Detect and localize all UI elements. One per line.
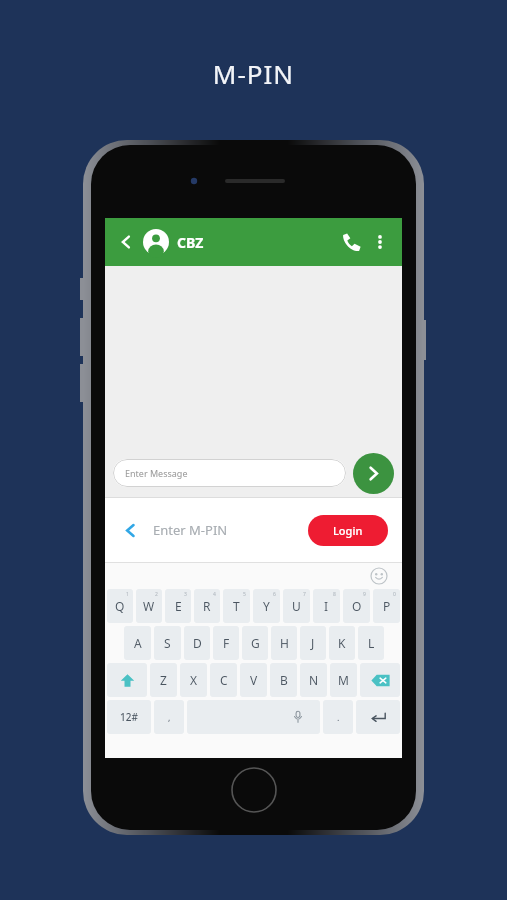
staticText: 5 [243, 591, 246, 598]
staticText: Login [333, 523, 363, 538]
button[interactable]: B [270, 663, 297, 697]
staticText: 2 [155, 591, 158, 598]
button[interactable]: 7 [283, 589, 310, 623]
staticText: I [324, 598, 329, 614]
button[interactable]: X [180, 663, 207, 697]
staticText: B [280, 672, 288, 688]
button[interactable]: Login [308, 515, 388, 546]
button[interactable]: Send [353, 453, 394, 494]
staticText: Z [160, 672, 167, 688]
staticText: M [338, 672, 349, 688]
button[interactable]: G [242, 626, 268, 660]
button[interactable]: 12# [107, 700, 151, 734]
staticText: Enter M-PIN [153, 521, 228, 539]
button[interactable]: D [184, 626, 210, 660]
staticText: 12# [120, 710, 138, 724]
staticText: J [311, 635, 315, 651]
button[interactable]: More options [368, 230, 392, 254]
staticText: L [368, 635, 375, 651]
staticText: T [233, 598, 240, 614]
button[interactable]: . [323, 700, 353, 734]
staticText: E [175, 598, 182, 614]
staticText: X [190, 672, 198, 688]
staticText: K [338, 635, 346, 651]
staticText: H [280, 635, 289, 651]
button[interactable]: C [210, 663, 237, 697]
staticText: Q [115, 598, 125, 614]
staticText: 4 [213, 591, 216, 598]
staticText: D [193, 635, 202, 651]
button[interactable]: Call [336, 227, 366, 257]
button[interactable]: 3 [165, 589, 191, 623]
button[interactable]: 2 [136, 589, 162, 623]
staticText: P [383, 598, 391, 614]
button[interactable]: 9 [343, 589, 370, 623]
button[interactable]: , [154, 700, 184, 734]
button[interactable]: Z [150, 663, 177, 697]
button[interactable]: V [240, 663, 267, 697]
staticText: W [143, 598, 155, 614]
staticText: G [251, 635, 260, 651]
button[interactable]: Backspace [360, 663, 400, 697]
button[interactable]: 8 [313, 589, 340, 623]
staticText: N [309, 672, 319, 688]
button[interactable]: 1 [107, 589, 133, 623]
staticText: , [168, 711, 171, 723]
button[interactable]: 5 [223, 589, 250, 623]
button[interactable]: Enter [356, 700, 400, 734]
button[interactable]: J [300, 626, 326, 660]
staticText: . [337, 711, 340, 723]
button[interactable]: Back [119, 519, 141, 541]
staticText: 8 [333, 591, 336, 598]
button[interactable]: K [329, 626, 355, 660]
button[interactable]: S [154, 626, 181, 660]
staticText: 0 [393, 591, 396, 598]
staticText: Enter Message [125, 467, 188, 479]
staticText: V [250, 672, 258, 688]
staticText: O [352, 598, 362, 614]
button[interactable]: Enter M-PIN [153, 521, 308, 539]
staticText: 1 [126, 591, 129, 598]
button[interactable]: A [124, 626, 151, 660]
staticText: 6 [273, 591, 276, 598]
staticText: C [220, 672, 228, 688]
staticText: A [134, 635, 142, 651]
staticText: M-PIN [0, 56, 507, 91]
button[interactable]: H [271, 626, 297, 660]
button[interactable]: Enter Message [113, 459, 346, 487]
button[interactable]: Space [187, 700, 320, 734]
button[interactable]: Back [115, 231, 137, 253]
staticText: S [164, 635, 171, 651]
button[interactable]: L [358, 626, 384, 660]
staticText: 7 [303, 591, 306, 598]
staticText: Y [263, 598, 270, 614]
staticText: R [203, 598, 211, 614]
button[interactable]: N [300, 663, 327, 697]
button[interactable]: M [330, 663, 357, 697]
button[interactable]: 4 [194, 589, 220, 623]
staticText: F [223, 635, 230, 651]
button[interactable]: 0 [373, 589, 400, 623]
button[interactable]: 6 [253, 589, 280, 623]
button[interactable]: Shift [107, 663, 147, 697]
staticText: 9 [363, 591, 366, 598]
staticText: 3 [184, 591, 187, 598]
staticText: CBZ [177, 233, 204, 252]
button[interactable]: F [213, 626, 239, 660]
button[interactable]: Emoji [370, 567, 388, 585]
staticText: U [292, 598, 301, 614]
